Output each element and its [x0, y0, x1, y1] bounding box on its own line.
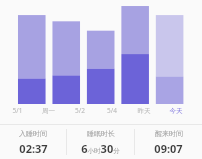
staticText: 5/1: [2, 106, 33, 115]
staticText: 今天: [160, 107, 192, 115]
staticText: 09:07: [154, 141, 183, 156]
staticText: 醒来时间: [155, 129, 183, 138]
staticText: 02:37: [19, 141, 48, 156]
staticText: 5/2: [64, 106, 96, 115]
button[interactable]: 醒来时间: [135, 125, 202, 159]
staticText: 5/4: [96, 106, 128, 115]
button[interactable]: 睡眠时长: [67, 125, 134, 159]
staticText: 周一: [33, 107, 64, 115]
button[interactable]: 入睡时间: [0, 125, 66, 159]
staticText: 6小时30分: [81, 141, 120, 156]
staticText: 入睡时间: [19, 129, 47, 138]
staticText: 昨天: [128, 107, 160, 115]
staticText: 睡眠时长: [87, 129, 115, 138]
